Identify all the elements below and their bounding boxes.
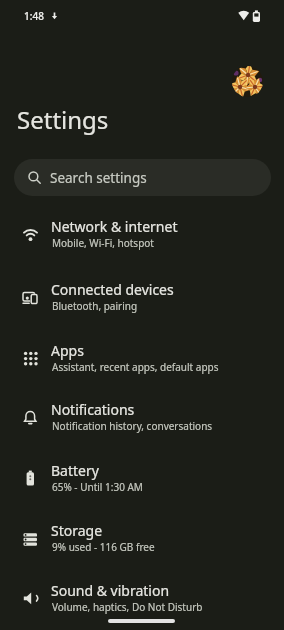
button[interactable]: Network & internet <box>0 210 284 271</box>
staticText: Mobile, Wi-Fi, hotspot <box>52 236 154 250</box>
staticText: Settings <box>17 103 109 136</box>
button[interactable] <box>232 66 263 97</box>
button[interactable]: Apps <box>0 334 284 395</box>
button[interactable]: Storage <box>0 514 284 575</box>
staticText: Notification history, conversations <box>52 419 213 433</box>
staticText: Bluetooth, pairing <box>52 299 138 313</box>
button[interactable]: Connected devices <box>0 273 284 334</box>
button[interactable]: Search settings <box>14 159 271 196</box>
staticText: Volume, haptics, Do Not Disturb <box>52 600 203 614</box>
staticText: Apps <box>51 341 84 360</box>
staticText: Notifications <box>51 400 135 419</box>
staticText: 9% used - 116 GB free <box>52 540 155 554</box>
staticText: Search settings <box>50 169 147 187</box>
staticText: 65% - Until 1:30 AM <box>52 480 143 494</box>
button[interactable]: Notifications <box>0 393 284 454</box>
button[interactable]: Battery <box>0 454 284 515</box>
staticText: Connected devices <box>51 280 174 299</box>
staticText: Battery <box>51 461 99 480</box>
staticText: Sound & vibration <box>51 581 170 600</box>
button[interactable]: Sound & vibration <box>0 574 284 630</box>
staticText: 1:48 <box>24 9 44 23</box>
staticText: Storage <box>51 521 103 540</box>
staticText: Network & internet <box>51 217 178 236</box>
staticText: Assistant, recent apps, default apps <box>52 360 219 374</box>
